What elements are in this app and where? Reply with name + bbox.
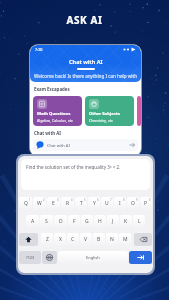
button[interactable]: Send [129, 251, 152, 264]
button[interactable]: M [119, 233, 131, 246]
staticText: 5 [84, 198, 86, 202]
staticText: W [37, 200, 42, 207]
staticText: Math Questions [37, 111, 71, 117]
button[interactable]: Emoji [42, 251, 57, 264]
staticText: U [105, 200, 109, 207]
button[interactable]: S [40, 215, 53, 228]
staticText: 0 [149, 198, 151, 202]
staticText: O [131, 200, 135, 207]
staticText: J [112, 218, 114, 225]
staticText: Y [93, 200, 96, 207]
staticText: Other Subjects [89, 111, 120, 117]
staticText: G [85, 218, 89, 225]
staticText: Welcome back! Is there anything I can he… [34, 73, 137, 79]
staticText: 4 [71, 198, 73, 202]
button[interactable]: Q [19, 197, 32, 210]
button[interactable]: Y [88, 197, 100, 210]
button[interactable]: ?123 [19, 251, 41, 264]
staticText: Algebra, Calculus, etc [37, 118, 73, 123]
button[interactable]: English [58, 251, 128, 264]
staticText: 3 [57, 198, 59, 202]
button[interactable]: Other Subjects [85, 96, 134, 126]
button[interactable]: Chat with AI [33, 139, 138, 151]
button[interactable]: R [61, 197, 74, 210]
staticText: Q [24, 200, 28, 207]
button[interactable]: N [106, 233, 118, 246]
staticText: 8 [123, 198, 125, 202]
button[interactable]: E [47, 197, 60, 210]
staticText: R [66, 200, 70, 207]
staticText: F [73, 218, 76, 225]
button[interactable]: Shift [19, 233, 38, 246]
staticText: Chat with AI [34, 130, 62, 136]
staticText: Exam Escapades [34, 86, 70, 92]
staticText: Chat with AI [69, 58, 103, 66]
button[interactable]: Backspace [134, 233, 152, 246]
staticText: ASK AI [0, 13, 169, 27]
button[interactable]: V [80, 233, 92, 246]
button[interactable]: U [101, 197, 113, 210]
staticText: S [45, 218, 48, 225]
button[interactable]: O [127, 197, 139, 210]
button[interactable]: A [26, 215, 39, 228]
button[interactable]: Math Questions [33, 96, 82, 126]
staticText: Find the solution set of the inequality … [26, 164, 121, 170]
button[interactable]: H [94, 215, 106, 228]
button[interactable]: L [133, 215, 145, 228]
staticText: Chemistry, etc [89, 118, 113, 123]
staticText: D [59, 218, 63, 225]
staticText: I [119, 200, 121, 207]
button[interactable]: Z [41, 233, 53, 246]
staticText: English [86, 255, 100, 260]
button[interactable]: X [54, 233, 66, 246]
staticText: 1 [29, 198, 31, 202]
button[interactable]: B [93, 233, 105, 246]
staticText: 6 [97, 198, 99, 202]
button[interactable]: J [107, 215, 119, 228]
staticText: C [71, 236, 75, 243]
staticText: Chat with AI [47, 143, 70, 148]
staticText: K [124, 218, 128, 225]
staticText: 2 [43, 198, 45, 202]
staticText: X [59, 236, 62, 243]
button[interactable]: W [33, 197, 46, 210]
button[interactable]: C [67, 233, 79, 246]
button[interactable]: D [54, 215, 67, 228]
staticText: 7:30 [35, 47, 43, 52]
button[interactable]: F [68, 215, 80, 228]
button[interactable]: I [114, 197, 126, 210]
button[interactable]: K [120, 215, 132, 228]
staticText: ?123 [26, 255, 35, 260]
staticText: Z [46, 236, 49, 243]
staticText: V [84, 236, 88, 243]
button[interactable]: G [81, 215, 93, 228]
staticText: H [98, 218, 102, 225]
staticText: 7 [110, 198, 112, 202]
staticText: A [31, 218, 35, 225]
staticText: 9 [136, 198, 138, 202]
staticText: P [144, 200, 148, 207]
staticText: T [80, 200, 83, 207]
staticText: M [123, 236, 128, 243]
staticText: L [138, 218, 141, 225]
staticText: B [97, 236, 101, 243]
staticText: E [52, 200, 55, 207]
button[interactable]: T [75, 197, 87, 210]
button[interactable]: P [140, 197, 152, 210]
staticText: N [110, 236, 114, 243]
